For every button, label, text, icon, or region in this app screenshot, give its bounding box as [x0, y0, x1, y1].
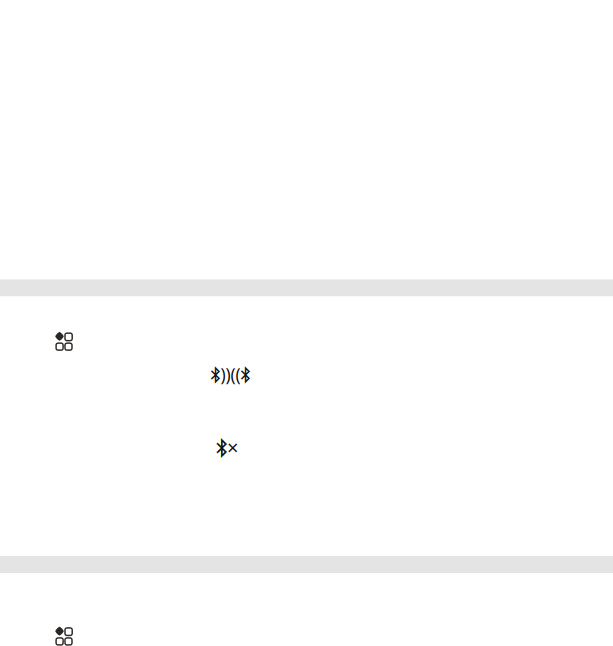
staticText: ))((: [210, 363, 250, 386]
staticText: ×: [216, 434, 238, 461]
